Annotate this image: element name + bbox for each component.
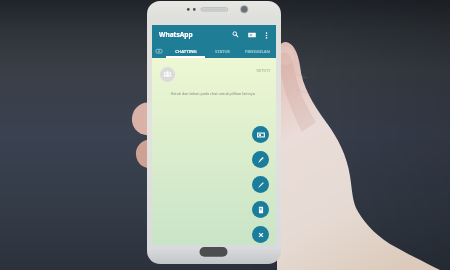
staticText: PANGGILAN <box>245 48 270 54</box>
button[interactable]: CHATTING <box>166 44 205 58</box>
staticText: 10/11/17 <box>256 68 271 73</box>
staticText: STATUS <box>215 48 230 54</box>
button[interactable]: PANGGILAN <box>239 44 276 58</box>
button[interactable]: New group <box>252 126 269 143</box>
button[interactable]: New chat <box>245 28 258 41</box>
staticText: WhatsApp <box>159 30 193 39</box>
staticText: Ketuk dan tahan pada chat untuk pilihan … <box>171 91 255 96</box>
button[interactable]: More options <box>260 29 272 41</box>
button[interactable]: New broadcast <box>252 151 269 168</box>
button[interactable]: Close <box>252 226 269 243</box>
button[interactable]: Search <box>229 28 242 41</box>
button[interactable]: New message <box>252 176 269 193</box>
button[interactable]: Documents <box>252 201 269 218</box>
button[interactable]: Group avatar <box>160 67 175 82</box>
button[interactable]: Camera <box>152 44 166 58</box>
staticText: CHATTING <box>175 48 197 54</box>
button[interactable]: STATUS <box>205 44 239 58</box>
